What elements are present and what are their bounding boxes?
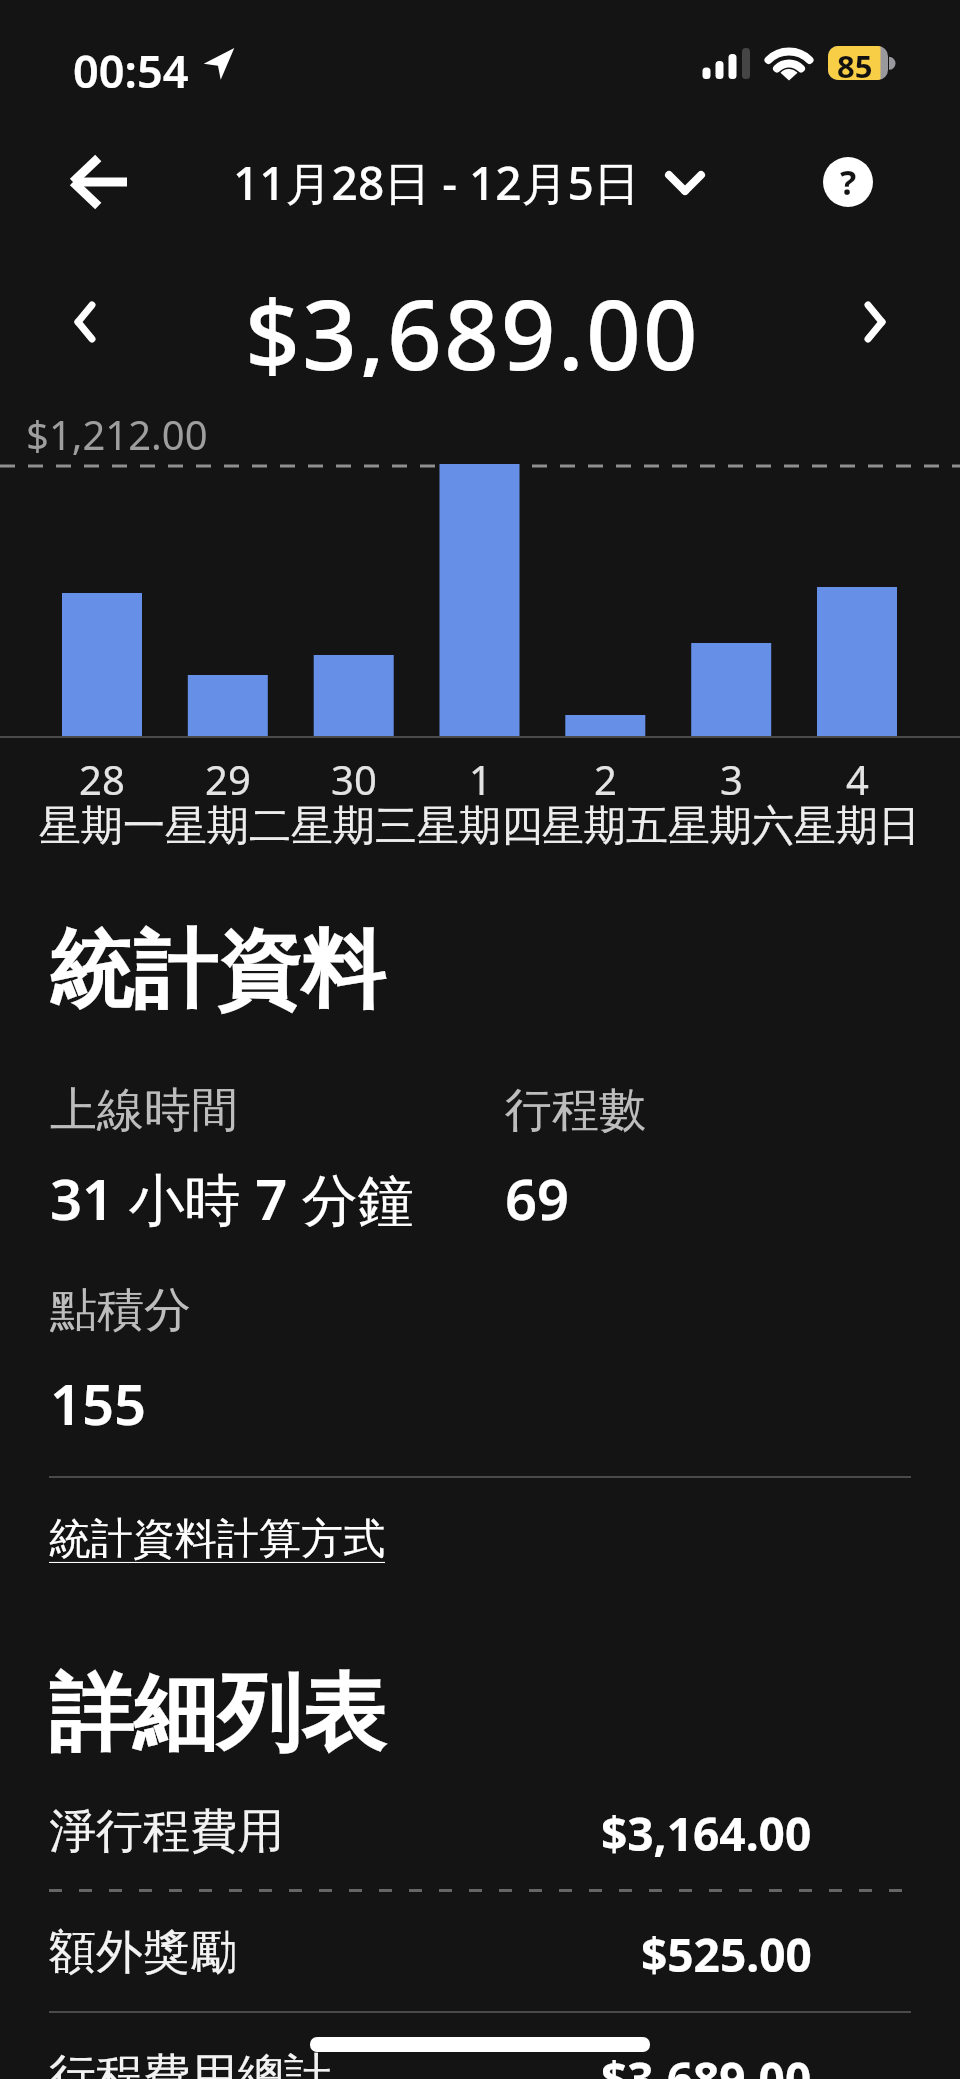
staticText: 星期日 <box>794 800 920 846</box>
button[interactable] <box>55 287 115 357</box>
staticText: 30 <box>331 752 377 802</box>
button[interactable]: ? <box>823 157 873 207</box>
staticText: $1,212.00 <box>26 407 208 455</box>
staticText: 淨行程費用 <box>49 1802 284 1858</box>
staticText: 2 <box>594 752 617 802</box>
staticText: 85 <box>837 45 873 79</box>
staticText: 69 <box>505 1160 570 1230</box>
staticText: 統計資料 <box>49 918 385 1024</box>
staticText: 31 小時 7 分鐘 <box>50 1160 414 1230</box>
staticText: 3 <box>720 752 743 802</box>
button[interactable]: 行程費用總計 <box>49 2047 812 2079</box>
staticText: $3,164.00 <box>601 1802 812 1858</box>
staticText: 行程費用總計 <box>49 2047 331 2079</box>
staticText: 00:54 <box>73 40 189 94</box>
staticText: 詳細列表 <box>49 1661 385 1767</box>
staticText: $3,689.00 <box>245 267 700 377</box>
staticText: 點積分 <box>50 1281 191 1340</box>
staticText: ? <box>840 159 857 205</box>
staticText: 星期六 <box>668 800 794 846</box>
staticText: 行程數 <box>505 1081 646 1140</box>
staticText: 上線時間 <box>50 1081 238 1140</box>
button[interactable] <box>55 145 145 219</box>
staticText: $3,689.00 <box>601 2047 812 2079</box>
staticText: 28 <box>79 752 125 802</box>
staticText: 星期一 <box>39 800 165 846</box>
staticText: 星期五 <box>542 800 668 846</box>
staticText: 星期三 <box>291 800 417 846</box>
button[interactable] <box>845 287 905 357</box>
button[interactable]: 淨行程費用 <box>49 1802 812 1858</box>
button[interactable]: 統計資料計算方式 <box>49 1513 385 1563</box>
staticText: 29 <box>205 752 251 802</box>
staticText: 星期二 <box>165 800 291 846</box>
staticText: 額外獎勵 <box>49 1923 237 1979</box>
staticText: 1 <box>469 752 492 802</box>
button[interactable]: 額外獎勵 <box>49 1923 812 1979</box>
staticText: 統計資料計算方式 <box>49 1513 385 1563</box>
staticText: 155 <box>50 1365 147 1435</box>
staticText: 星期四 <box>417 800 543 846</box>
staticText: 11月28日 - 12月5日 <box>233 151 640 214</box>
staticText: 4 <box>846 752 869 802</box>
staticText: $525.00 <box>641 1923 812 1979</box>
button[interactable]: 11月28日 - 12月5日 <box>233 151 704 214</box>
